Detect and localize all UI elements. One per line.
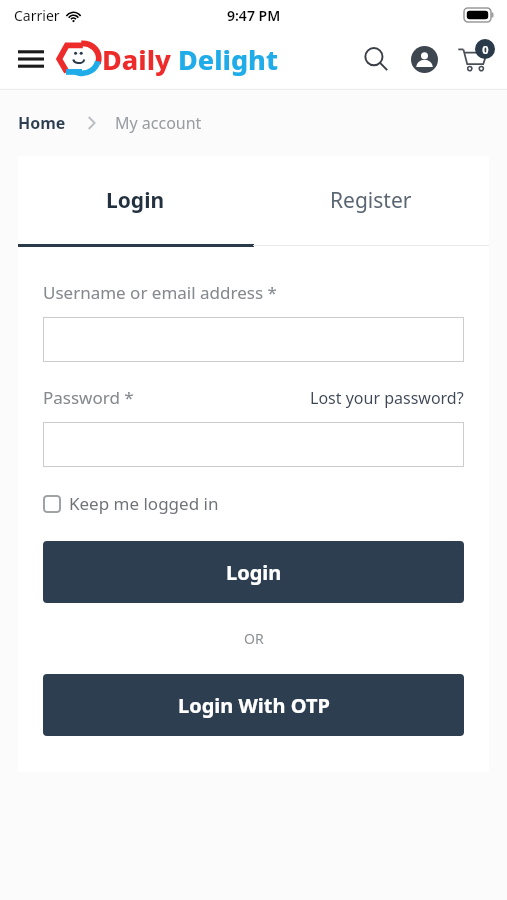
staticText: Password * bbox=[43, 386, 134, 409]
button[interactable]: Login bbox=[43, 541, 464, 603]
staticText: Login With OTP bbox=[178, 692, 330, 719]
staticText: My account bbox=[115, 112, 202, 134]
button[interactable] bbox=[43, 317, 464, 362]
staticText: Register bbox=[330, 186, 412, 215]
button[interactable]: Login With OTP bbox=[43, 674, 464, 736]
button[interactable]: Register bbox=[253, 156, 489, 244]
staticText: Daily bbox=[102, 41, 171, 78]
button[interactable]: Search bbox=[357, 40, 395, 78]
button[interactable]: Account bbox=[405, 40, 443, 78]
button[interactable]: Cart, 0 items bbox=[451, 37, 495, 81]
button[interactable] bbox=[43, 422, 464, 467]
staticText: Keep me logged in bbox=[69, 492, 219, 515]
button[interactable]: Home bbox=[18, 112, 66, 134]
staticText: Login bbox=[106, 186, 165, 215]
staticText: Delight bbox=[178, 41, 278, 78]
button[interactable]: Keep me logged in bbox=[43, 492, 219, 515]
staticText: Home bbox=[18, 112, 66, 134]
staticText: Carrier bbox=[14, 6, 60, 25]
staticText: 9:47 PM bbox=[227, 6, 281, 25]
staticText: Login bbox=[226, 559, 282, 586]
staticText: 0 bbox=[482, 42, 489, 57]
staticText: Lost your password? bbox=[310, 387, 464, 409]
button[interactable]: Login bbox=[18, 156, 253, 244]
staticText: Username or email address * bbox=[43, 281, 277, 304]
button[interactable]: Lost your password? bbox=[310, 387, 464, 409]
staticText: OR bbox=[244, 629, 264, 648]
button[interactable]: Menu bbox=[14, 42, 48, 76]
